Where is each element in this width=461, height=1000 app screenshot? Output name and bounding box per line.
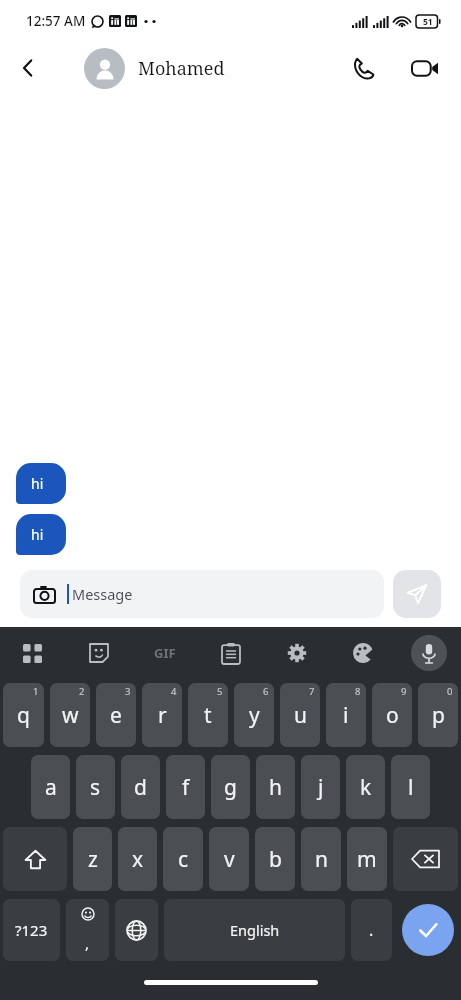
- button[interactable]: Voice call: [339, 44, 387, 92]
- button[interactable]: 8: [326, 683, 366, 747]
- staticText: Mohamed: [138, 56, 225, 81]
- button[interactable]: a: [31, 755, 70, 819]
- button[interactable]: Apps: [14, 635, 50, 671]
- staticText: 9: [401, 685, 407, 698]
- button[interactable]: Message: [20, 570, 384, 618]
- button[interactable]: h: [256, 755, 295, 819]
- staticText: z: [88, 845, 98, 874]
- staticText: b: [269, 845, 282, 874]
- button[interactable]: hi: [16, 514, 66, 555]
- staticText: m: [357, 845, 377, 874]
- button[interactable]: Voice input: [411, 635, 447, 671]
- button[interactable]: n: [301, 827, 341, 891]
- staticText: r: [158, 701, 167, 730]
- staticText: Message: [72, 584, 133, 604]
- staticText: d: [134, 773, 147, 802]
- button[interactable]: f: [166, 755, 205, 819]
- button[interactable]: hi: [16, 463, 66, 504]
- staticText: f: [182, 773, 190, 802]
- button[interactable]: ?123: [3, 899, 60, 961]
- staticText: ,: [85, 933, 90, 953]
- button[interactable]: x: [118, 827, 157, 891]
- button[interactable]: Emoji and comma: [66, 899, 109, 961]
- staticText: c: [178, 845, 189, 874]
- staticText: w: [62, 701, 79, 730]
- staticText: i: [343, 701, 349, 730]
- button[interactable]: b: [255, 827, 295, 891]
- button[interactable]: 7: [280, 683, 320, 747]
- button[interactable]: s: [76, 755, 115, 819]
- staticText: u: [294, 701, 307, 730]
- staticText: k: [360, 773, 372, 802]
- staticText: 5: [217, 685, 223, 698]
- button[interactable]: Clipboard: [213, 635, 249, 671]
- button[interactable]: 2: [50, 683, 90, 747]
- button[interactable]: 3: [96, 683, 136, 747]
- staticText: 4: [171, 685, 177, 698]
- button[interactable]: 4: [142, 683, 182, 747]
- staticText: q: [17, 701, 30, 730]
- staticText: ?123: [15, 920, 48, 940]
- staticText: hi: [31, 525, 44, 544]
- staticText: l: [408, 773, 414, 802]
- staticText: n: [315, 845, 328, 874]
- button[interactable]: Shift: [3, 827, 67, 891]
- staticText: h: [269, 773, 282, 802]
- button[interactable]: Confirm: [402, 904, 454, 956]
- staticText: 6: [263, 685, 269, 698]
- staticText: y: [249, 701, 260, 730]
- button[interactable]: English: [164, 899, 345, 961]
- button[interactable]: g: [211, 755, 250, 819]
- staticText: p: [432, 701, 445, 730]
- staticText: 1: [33, 685, 39, 698]
- staticText: o: [386, 701, 399, 730]
- staticText: hi: [31, 474, 44, 493]
- staticText: 51: [423, 16, 433, 28]
- button[interactable]: k: [346, 755, 385, 819]
- staticText: v: [224, 845, 235, 874]
- staticText: 2: [79, 685, 85, 698]
- button[interactable]: 5: [188, 683, 228, 747]
- staticText: 7: [309, 685, 315, 698]
- staticText: s: [90, 773, 101, 802]
- button[interactable]: z: [73, 827, 112, 891]
- button[interactable]: Settings: [279, 635, 315, 671]
- button[interactable]: Change language: [115, 899, 158, 961]
- staticText: English: [230, 920, 280, 940]
- button[interactable]: GIF: [147, 635, 183, 671]
- staticText: .: [369, 919, 374, 941]
- staticText: e: [110, 701, 122, 730]
- button[interactable]: Video call: [401, 44, 449, 92]
- staticText: 0: [447, 685, 453, 698]
- button[interactable]: j: [301, 755, 340, 819]
- staticText: a: [45, 773, 57, 802]
- staticText: x: [132, 845, 144, 874]
- button[interactable]: m: [347, 827, 387, 891]
- staticText: j: [318, 773, 324, 802]
- button[interactable]: 1: [3, 683, 44, 747]
- button[interactable]: l: [391, 755, 430, 819]
- staticText: 3: [125, 685, 131, 698]
- button[interactable]: 0: [418, 683, 458, 747]
- button[interactable]: Backspace: [393, 827, 458, 891]
- button[interactable]: Mohamed: [84, 48, 225, 89]
- button[interactable]: d: [121, 755, 160, 819]
- staticText: g: [224, 773, 237, 802]
- button[interactable]: .: [351, 899, 392, 961]
- staticText: 12:57 AM: [26, 12, 86, 30]
- button[interactable]: Back: [0, 42, 56, 94]
- button[interactable]: v: [209, 827, 249, 891]
- staticText: t: [204, 701, 212, 730]
- button[interactable]: 9: [372, 683, 412, 747]
- staticText: GIF: [154, 644, 176, 662]
- button[interactable]: 6: [234, 683, 274, 747]
- button[interactable]: Stickers: [81, 635, 117, 671]
- button[interactable]: c: [163, 827, 203, 891]
- button[interactable]: Theme: [345, 635, 381, 671]
- button[interactable]: Send: [393, 570, 441, 618]
- staticText: 8: [355, 685, 361, 698]
